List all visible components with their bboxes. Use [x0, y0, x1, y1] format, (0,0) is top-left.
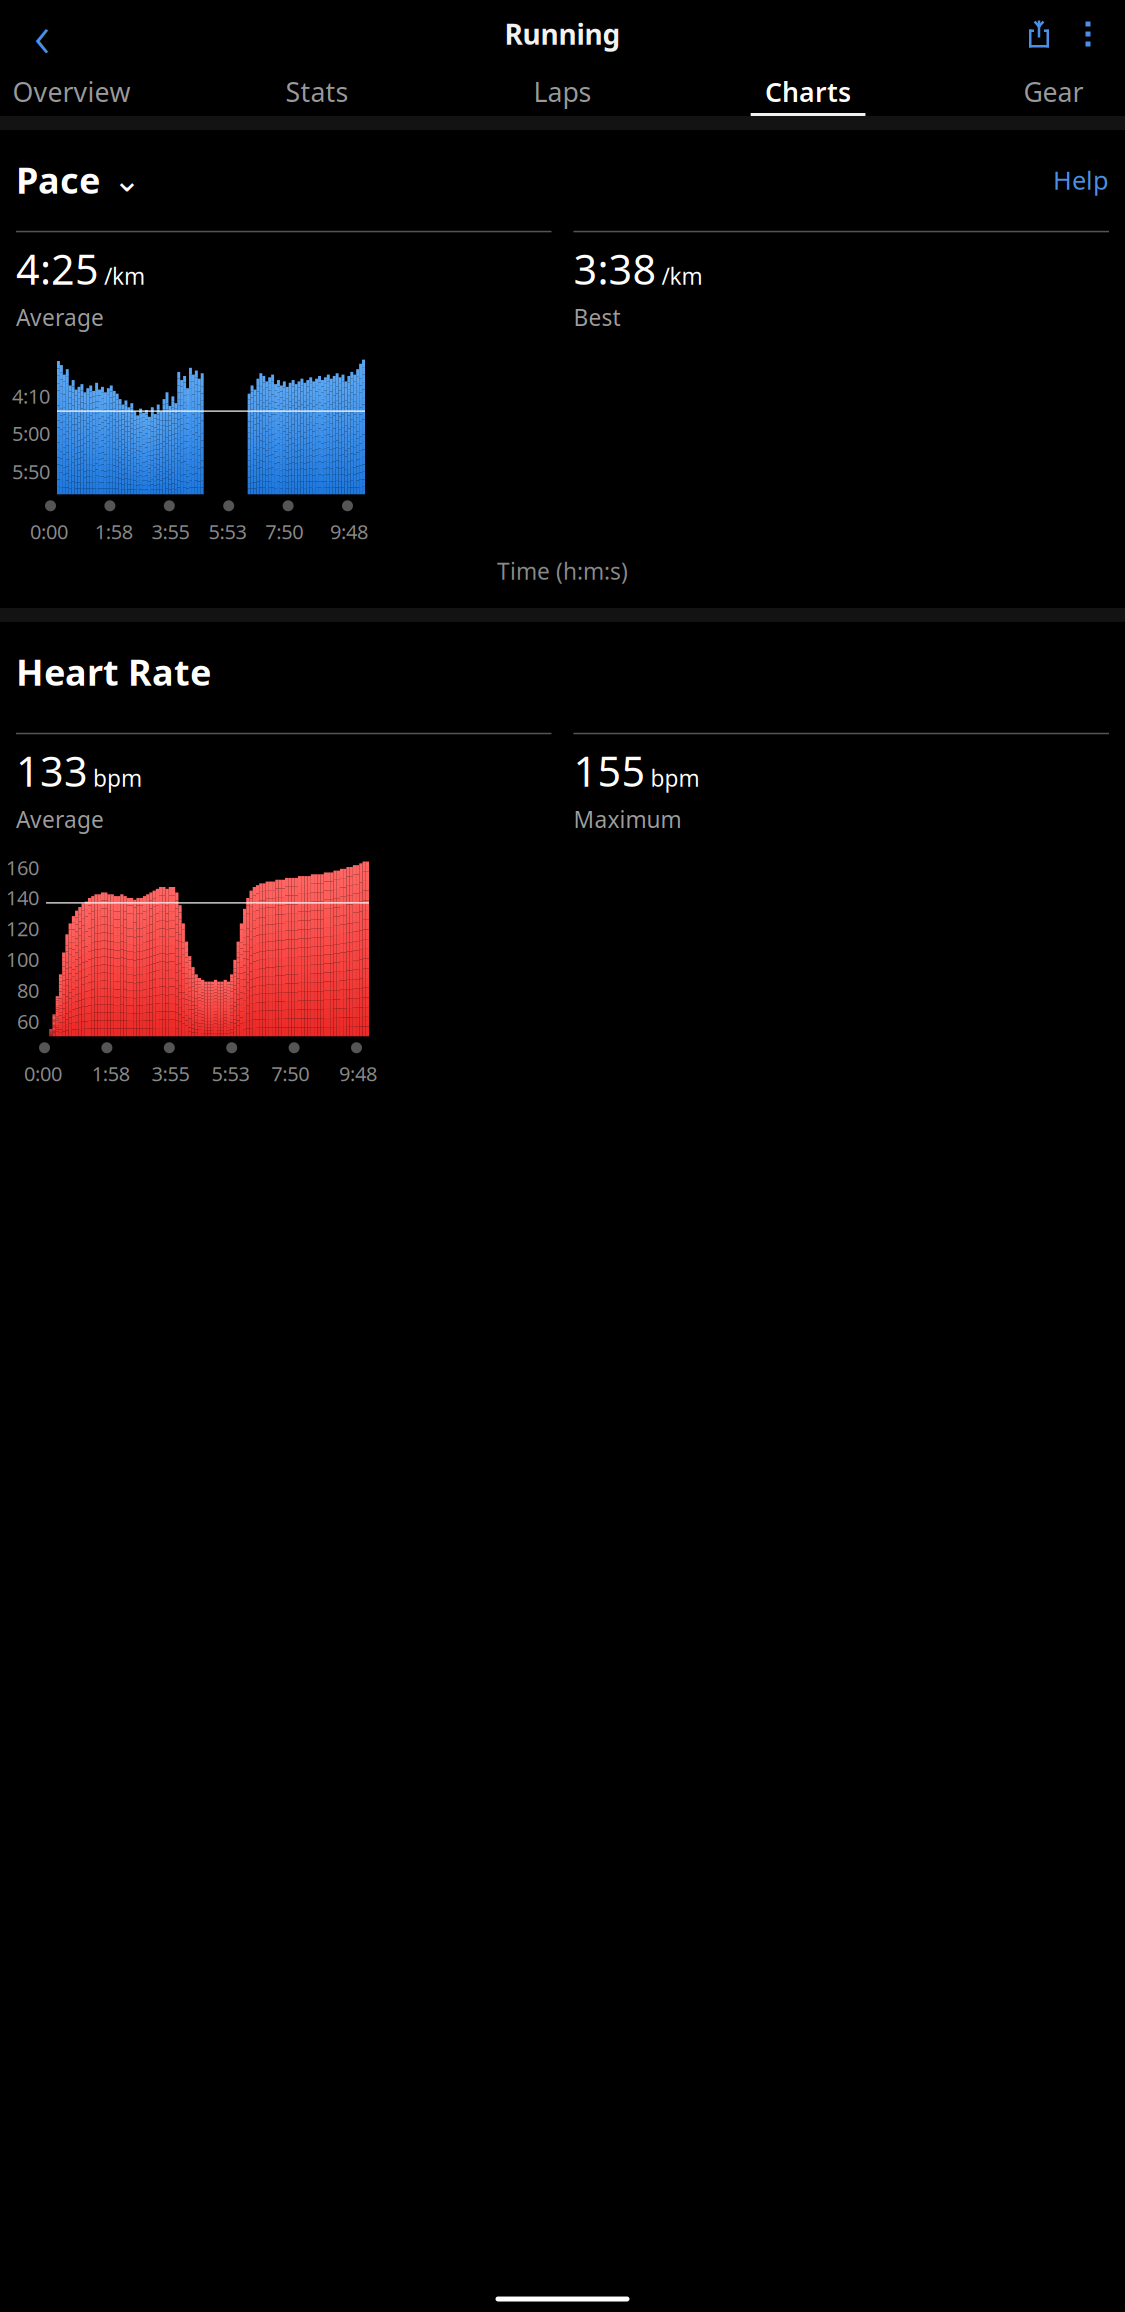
staticText: 100: [6, 946, 39, 973]
staticText: 133: [16, 743, 88, 798]
staticText: Charts: [765, 74, 851, 109]
staticText: 1:58: [92, 1060, 130, 1087]
staticText: 4:10: [12, 383, 50, 409]
staticText: Average: [16, 302, 104, 332]
staticText: Stats: [285, 74, 348, 109]
staticText: 5:53: [211, 1060, 249, 1087]
staticText: bpm: [93, 763, 142, 793]
staticText: Best: [573, 302, 620, 332]
staticText: ⌄: [113, 161, 141, 199]
staticText: Time (h:m:s): [497, 556, 628, 586]
staticText: 60: [17, 1008, 39, 1035]
staticText: 7:50: [265, 518, 303, 545]
staticText: 155: [573, 743, 645, 798]
button[interactable]: More options: [1065, 8, 1111, 60]
staticText: /km: [104, 261, 145, 291]
button[interactable]: Laps: [501, 60, 624, 116]
staticText: 5:00: [12, 420, 50, 447]
staticText: 3:55: [152, 1060, 190, 1087]
staticText: 0:00: [24, 1060, 62, 1087]
staticText: 5:50: [12, 458, 50, 485]
button[interactable]: Stats: [256, 60, 378, 116]
staticText: Overview: [12, 74, 130, 109]
button[interactable]: Overview: [10, 60, 133, 116]
button[interactable]: Pace: [16, 156, 141, 204]
staticText: /km: [661, 261, 702, 291]
staticText: 80: [17, 977, 39, 1004]
staticText: bpm: [650, 763, 699, 793]
button[interactable]: Share: [1013, 8, 1065, 60]
staticText: ‹: [34, 0, 50, 75]
staticText: 5:53: [208, 518, 246, 545]
staticText: Pace: [16, 156, 100, 204]
staticText: Gear: [1024, 74, 1084, 109]
button[interactable]: Help: [1053, 163, 1109, 197]
staticText: 7:50: [271, 1060, 309, 1087]
staticText: 3:55: [152, 518, 190, 545]
staticText: 9:48: [339, 1060, 377, 1087]
staticText: 3:38: [573, 241, 656, 296]
staticText: Laps: [533, 74, 591, 109]
staticText: Running: [504, 15, 620, 53]
staticText: 120: [6, 915, 39, 942]
button[interactable]: Gear: [992, 60, 1115, 116]
staticText: 140: [6, 884, 39, 911]
button[interactable]: Back: [14, 8, 70, 60]
staticText: Maximum: [573, 804, 681, 834]
staticText: Help: [1053, 163, 1109, 197]
staticText: 0:00: [30, 518, 68, 545]
staticText: 4:25: [16, 241, 99, 296]
button[interactable]: Charts: [747, 60, 869, 116]
staticText: 1:58: [95, 518, 133, 545]
staticText: 9:48: [330, 518, 368, 545]
staticText: Heart Rate: [16, 648, 211, 696]
staticText: 160: [6, 854, 39, 881]
staticText: Average: [16, 804, 104, 834]
